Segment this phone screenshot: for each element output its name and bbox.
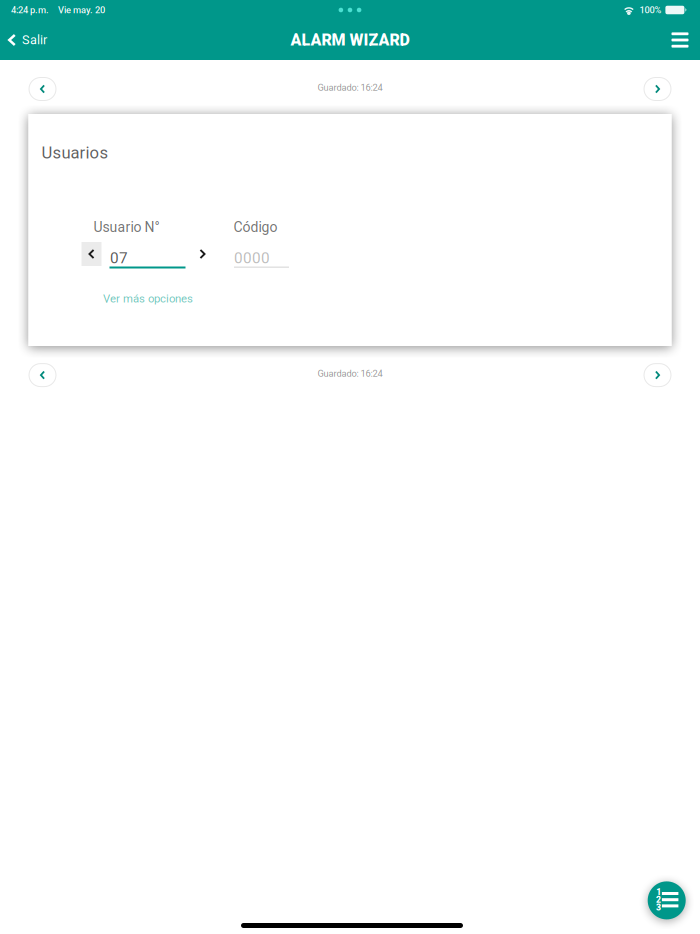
staticText: Guardado: 16:24 xyxy=(317,368,382,379)
staticText: Vie may. 20 xyxy=(58,4,105,15)
button[interactable]: Anterior xyxy=(29,77,56,100)
button[interactable]: Salir xyxy=(0,20,57,60)
staticText: 07 xyxy=(110,249,128,267)
staticText: 3 xyxy=(656,902,661,913)
button[interactable]: Menú xyxy=(660,20,700,60)
staticText: ALARM WIZARD xyxy=(290,31,409,49)
button[interactable]: Siguiente xyxy=(644,364,671,387)
staticText: Ver más opciones xyxy=(103,292,193,305)
button[interactable]: Ver más opciones xyxy=(100,289,196,308)
staticText: Salir xyxy=(22,33,47,47)
button[interactable]: Usuario anterior xyxy=(81,242,101,266)
staticText: Usuarios xyxy=(41,143,108,162)
button[interactable]: Siguiente xyxy=(644,77,671,100)
button[interactable]: Usuario siguiente xyxy=(191,242,213,266)
staticText: 1 xyxy=(656,887,661,897)
button[interactable]: Anterior xyxy=(29,364,56,387)
button[interactable]: Opciones de lista xyxy=(648,881,686,919)
staticText: 0000 xyxy=(234,249,270,267)
staticText: Código xyxy=(233,219,277,235)
staticText: Usuario N° xyxy=(93,219,159,235)
staticText: Guardado: 16:24 xyxy=(317,82,382,93)
staticText: 4:24 p.m. xyxy=(11,4,49,15)
staticText: 2 xyxy=(656,895,661,905)
staticText: 100% xyxy=(639,4,661,15)
